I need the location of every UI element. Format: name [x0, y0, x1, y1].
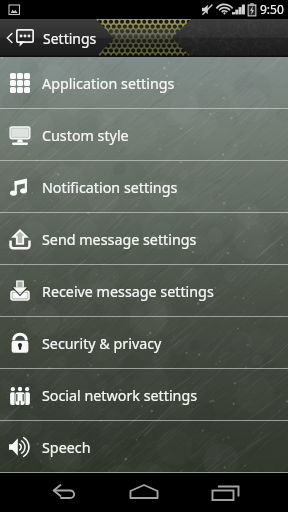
button[interactable]: Application settings [0, 57, 288, 109]
button[interactable]: Security & privacy [0, 317, 288, 369]
button[interactable]: Speech [0, 421, 288, 473]
button[interactable]: Navigation bar [0, 473, 288, 512]
staticText: Settings [43, 29, 97, 48]
button[interactable]: Custom style [0, 109, 288, 161]
staticText: 9:50 [260, 1, 284, 17]
button[interactable]: Send message settings [0, 213, 288, 265]
staticText: Custom style [42, 126, 129, 145]
staticText: Application settings [42, 74, 175, 93]
staticText: Social network settings [42, 386, 198, 405]
other: Back [6, 31, 13, 45]
button[interactable]: Back [0, 29, 36, 47]
staticText: Speech [42, 438, 91, 457]
button[interactable]: Notification settings [0, 161, 288, 213]
staticText: Receive message settings [42, 282, 214, 301]
staticText: Security & privacy [42, 334, 162, 353]
button[interactable]: Receive message settings [0, 265, 288, 317]
staticText: Send message settings [42, 230, 197, 249]
staticText: Notification settings [42, 178, 178, 197]
button[interactable]: Social network settings [0, 369, 288, 421]
